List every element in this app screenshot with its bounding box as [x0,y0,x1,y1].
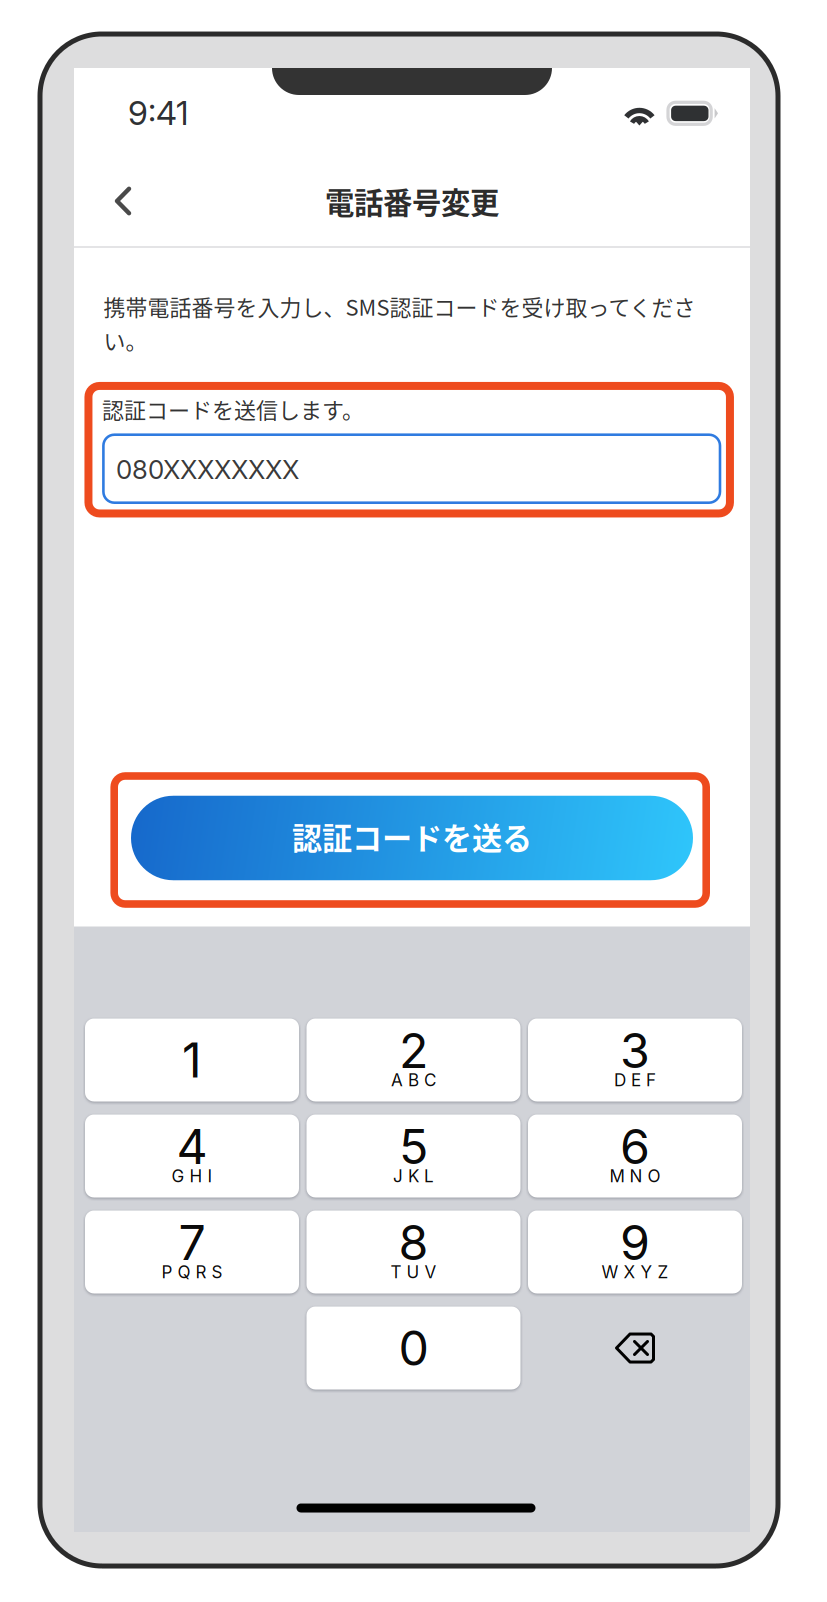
button[interactable]: 1 [85,1018,299,1101]
staticText: 080XXXXXXXX [116,454,299,485]
staticText: T U V [390,1262,436,1282]
staticText: 認証コードを送信します。 [102,393,364,425]
staticText: W X Y Z [601,1262,668,1282]
button[interactable]: 6 [528,1114,742,1197]
button[interactable]: 2 [306,1018,520,1101]
staticText: J K L [393,1166,434,1186]
staticText: A B C [391,1070,436,1090]
staticText: 3 [620,1021,650,1080]
staticText: 5 [399,1117,428,1176]
staticText: 9:41 [128,93,189,133]
button[interactable]: 認証コードを送る [131,796,693,880]
staticText: 6 [620,1117,650,1176]
staticText: 2 [399,1021,428,1080]
staticText: 0 [398,1319,428,1377]
button[interactable]: 3 [528,1018,742,1101]
staticText: 7 [178,1213,205,1272]
button[interactable]: 7 [85,1210,299,1293]
staticText: 4 [176,1117,207,1176]
staticText: 9 [620,1213,650,1272]
staticText: 8 [398,1213,428,1272]
staticText: G H I [171,1166,212,1186]
staticText: D E F [614,1070,656,1090]
button[interactable]: Delete [528,1306,742,1389]
staticText: M N O [609,1166,660,1186]
staticText: 認証コードを送る [292,815,532,858]
button[interactable]: 0 [306,1306,520,1389]
button[interactable]: 5 [306,1114,520,1197]
button[interactable]: 4 [85,1114,299,1197]
button[interactable]: Back [86,164,160,238]
staticText: 電話番号変更 [325,180,499,222]
staticText: 携帯電話番号を入力し、SMS認証コードを受け取ってください。 [103,290,695,356]
staticText: 1 [182,1031,202,1089]
staticText: P Q R S [161,1262,222,1282]
button[interactable]: 8 [306,1210,520,1293]
button[interactable]: 9 [528,1210,742,1293]
